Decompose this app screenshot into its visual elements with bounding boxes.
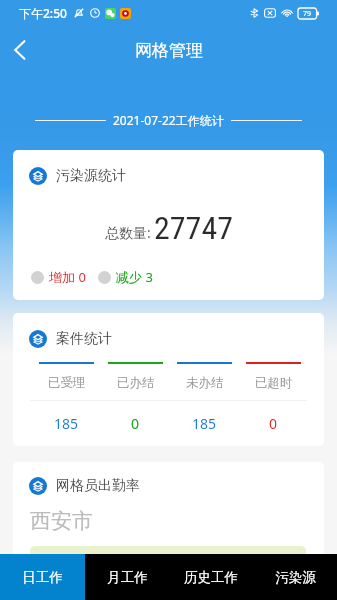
staticText: 185 — [54, 414, 79, 433]
button[interactable]: 月工作 — [85, 554, 169, 600]
staticText: 已办结 — [117, 375, 155, 391]
staticText: 月工作 — [107, 569, 148, 586]
staticText: 减少 3 — [116, 268, 153, 286]
button[interactable]: 日工作 — [0, 554, 85, 600]
staticText: 历史工作 — [184, 569, 238, 586]
staticText: 网格员出勤率 — [56, 477, 140, 495]
button[interactable]: 污染源 — [253, 554, 337, 600]
button[interactable]: 网格员出勤率 — [13, 462, 324, 572]
staticText: 未办结 — [186, 375, 224, 391]
staticText: 已受理 — [48, 375, 86, 391]
staticText: 下午2:50 — [19, 5, 67, 21]
staticText: 增加 0 — [49, 268, 86, 286]
staticText: 185 — [192, 414, 217, 433]
staticText: 2021-07-22工作统计 — [113, 112, 224, 128]
staticText: 污染源统计 — [56, 167, 126, 185]
button[interactable]: Back — [0, 30, 40, 70]
staticText: 总数量: — [105, 223, 151, 242]
button[interactable]: 案件统计 — [13, 313, 324, 446]
staticText: 已超时 — [255, 375, 293, 391]
staticText: 案件统计 — [56, 330, 112, 348]
staticText: 27747 — [154, 209, 233, 247]
staticText: 日工作 — [22, 569, 63, 586]
staticText: 网格管理 — [135, 40, 203, 61]
staticText: 79 — [303, 9, 312, 19]
staticText: 0 — [269, 414, 278, 433]
staticText: 污染源 — [275, 569, 316, 586]
staticText: 西安市 — [30, 508, 93, 534]
button[interactable]: 历史工作 — [169, 554, 253, 600]
staticText: 0 — [131, 414, 140, 433]
button[interactable]: 污染源统计 — [13, 150, 324, 300]
